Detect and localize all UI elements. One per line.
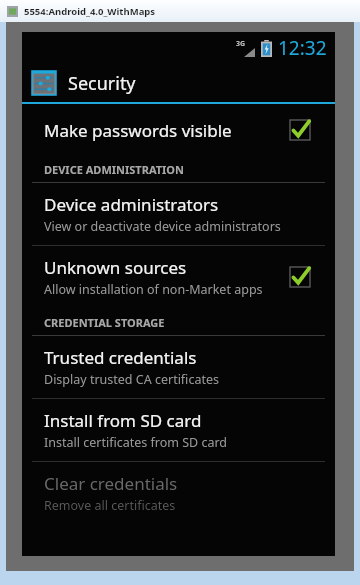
staticText: Install from SD card xyxy=(44,409,202,432)
staticText: Device administrators xyxy=(44,193,219,216)
button[interactable]: Install from SD card xyxy=(22,399,335,461)
button[interactable]: Device administrators xyxy=(22,183,335,245)
staticText: CREDENTIAL STORAGE xyxy=(44,315,165,330)
staticText: DEVICE ADMINISTRATION xyxy=(44,162,184,177)
staticText: View or deactivate device administrators xyxy=(44,218,281,235)
staticText: Install certificates from SD card xyxy=(44,434,228,451)
staticText: Unknown sources xyxy=(44,256,187,279)
staticText: Display trusted CA certificates xyxy=(44,371,219,388)
button[interactable]: Clear credentials xyxy=(22,462,335,524)
staticText: 5554:Android_4.0_WithMaps xyxy=(24,5,156,18)
staticText: Security xyxy=(68,71,136,96)
staticText: Allow installation of non-Market apps xyxy=(44,281,263,298)
button[interactable]: Toggle checkbox xyxy=(285,115,315,145)
staticText: Trusted credentials xyxy=(44,346,197,369)
button[interactable]: Make passwords visible xyxy=(22,105,335,155)
staticText: 3G xyxy=(236,39,246,49)
button[interactable]: Unknown sources xyxy=(22,246,335,308)
staticText: Remove all certificates xyxy=(44,497,176,514)
button[interactable]: Trusted credentials xyxy=(22,336,335,398)
staticText: Make passwords visible xyxy=(44,119,232,142)
staticText: Clear credentials xyxy=(44,472,178,495)
button[interactable]: Toggle checkbox xyxy=(285,262,315,292)
staticText: 12:32 xyxy=(278,35,327,61)
